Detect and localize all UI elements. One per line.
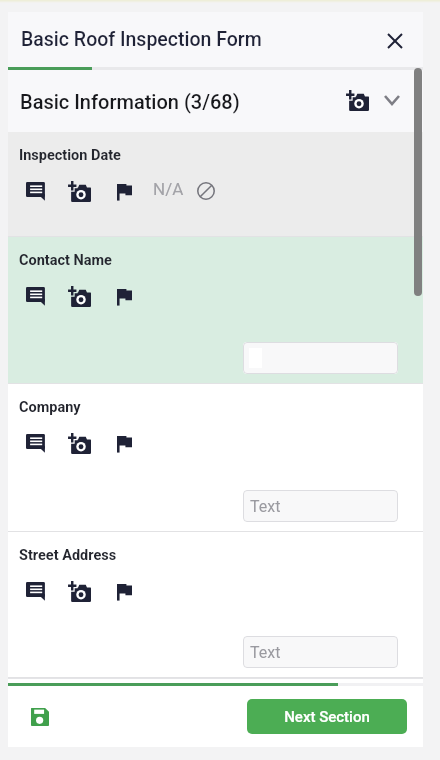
staticText: Text — [250, 497, 281, 516]
button[interactable]: Basic Information (3/68) — [8, 70, 423, 132]
button[interactable]: Flag — [113, 432, 139, 458]
button[interactable]: Inspection Date — [8, 132, 423, 237]
button[interactable] — [243, 342, 398, 374]
button[interactable]: Text — [243, 490, 398, 522]
button[interactable]: Street Address — [8, 532, 423, 678]
button[interactable]: Flag — [113, 285, 139, 311]
staticText: Next Section — [284, 708, 370, 726]
staticText: Contact Name — [19, 252, 112, 269]
button[interactable]: Company — [8, 384, 423, 532]
staticText: Inspection Date — [19, 147, 121, 164]
button[interactable]: Close — [376, 22, 414, 60]
button[interactable]: Comment — [22, 578, 48, 604]
button[interactable]: Comment — [22, 178, 48, 204]
staticText: Basic Information (3/68) — [20, 90, 240, 113]
staticText: Company — [19, 399, 81, 416]
button[interactable]: Not applicable — [193, 178, 219, 204]
button[interactable]: Add photo — [64, 577, 90, 603]
button[interactable]: Add photo — [64, 177, 90, 203]
button[interactable]: Add photo — [64, 429, 90, 455]
button[interactable]: Comment — [22, 430, 48, 456]
staticText: Basic Roof Inspection Form — [21, 28, 262, 51]
button[interactable]: Add photo — [341, 85, 373, 117]
button[interactable]: Comment — [22, 283, 48, 309]
button[interactable]: Collapse section — [377, 85, 407, 115]
staticText: N/A — [153, 179, 184, 199]
staticText: Text — [250, 643, 281, 662]
button[interactable]: Add photo — [64, 282, 90, 308]
button[interactable]: Contact Name — [8, 237, 423, 384]
button[interactable]: Text — [243, 636, 398, 668]
button[interactable]: Flag — [113, 580, 139, 606]
staticText: Street Address — [19, 547, 117, 564]
button[interactable]: Next Section — [247, 699, 407, 734]
button[interactable]: Flag — [113, 180, 139, 206]
button[interactable]: Save — [27, 704, 69, 746]
